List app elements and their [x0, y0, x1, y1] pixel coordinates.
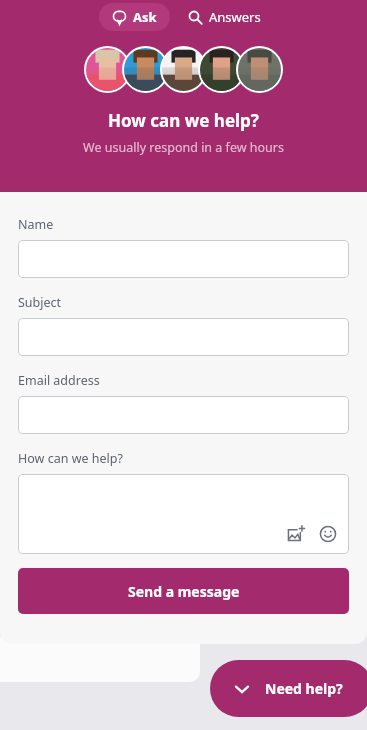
button[interactable] [18, 240, 349, 278]
staticText: How can we help? [18, 450, 123, 467]
button[interactable]: Insert emoji [317, 523, 339, 545]
staticText: How can we help? [108, 109, 259, 132]
button[interactable] [18, 318, 349, 356]
button[interactable] [18, 396, 349, 434]
staticText: Ask [133, 8, 157, 26]
button[interactable]: Send a message [18, 568, 349, 614]
button[interactable]: Need help? [210, 660, 367, 717]
staticText: Name [18, 216, 54, 233]
staticText: Email address [18, 372, 100, 389]
staticText: We usually respond in a few hours [83, 139, 284, 156]
staticText: Answers [209, 8, 261, 26]
staticText: Need help? [265, 679, 343, 698]
staticText: Subject [18, 294, 62, 311]
button[interactable]: Attach image [18, 474, 349, 554]
button[interactable]: Ask [99, 3, 170, 31]
staticText: Send a message [128, 582, 240, 601]
button[interactable]: Answers [180, 3, 269, 31]
button[interactable]: Attach image [285, 523, 307, 545]
